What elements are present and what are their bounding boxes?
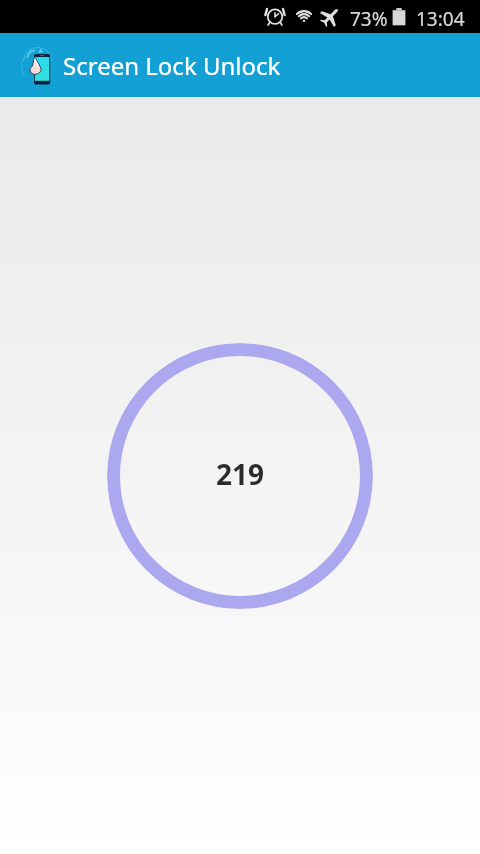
staticText: 13:04 <box>416 6 465 32</box>
button[interactable]: Unlock count 219 <box>107 343 373 609</box>
staticText: Screen Lock Unlock <box>63 49 281 82</box>
staticText: 219 <box>216 455 265 493</box>
button[interactable]: App icon <box>20 47 54 83</box>
staticText: 73% <box>350 6 388 32</box>
